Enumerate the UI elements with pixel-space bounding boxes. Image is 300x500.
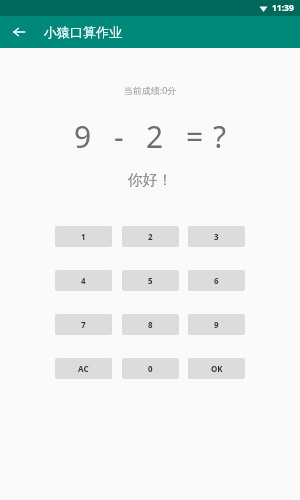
staticText: OK <box>211 363 223 374</box>
staticText: 4 <box>81 275 86 286</box>
staticText: = <box>186 116 204 157</box>
button[interactable]: 8 <box>122 314 179 335</box>
staticText: 11:39 <box>272 2 294 14</box>
staticText: 你好！ <box>0 171 300 190</box>
button[interactable]: 0 <box>122 358 179 379</box>
staticText: AC <box>78 363 89 374</box>
button[interactable]: AC <box>55 358 112 379</box>
button[interactable]: 9 <box>188 314 245 335</box>
staticText: 小猿口算作业 <box>44 24 122 40</box>
button[interactable]: 5 <box>122 270 179 291</box>
button[interactable]: 1 <box>55 226 112 247</box>
staticText: 3 <box>214 231 219 242</box>
button[interactable]: 6 <box>188 270 245 291</box>
button[interactable]: Back <box>6 19 32 45</box>
button[interactable]: 3 <box>188 226 245 247</box>
staticText: 5 <box>148 275 153 286</box>
staticText: 2 <box>148 231 153 242</box>
button[interactable]: 7 <box>55 314 112 335</box>
staticText: ? <box>213 116 227 157</box>
staticText: 0 <box>148 363 153 374</box>
button[interactable]: OK <box>188 358 245 379</box>
staticText: 6 <box>214 275 219 286</box>
staticText: 9 <box>214 319 219 330</box>
staticText: 7 <box>81 319 86 330</box>
button[interactable]: 4 <box>55 270 112 291</box>
staticText: 当前成绩:0分 <box>0 84 300 96</box>
staticText: 8 <box>148 319 153 330</box>
staticText: 2 <box>146 116 164 157</box>
staticText: 9 <box>74 116 92 157</box>
button[interactable]: 2 <box>122 226 179 247</box>
staticText: - <box>114 116 124 157</box>
staticText: 1 <box>81 231 86 242</box>
